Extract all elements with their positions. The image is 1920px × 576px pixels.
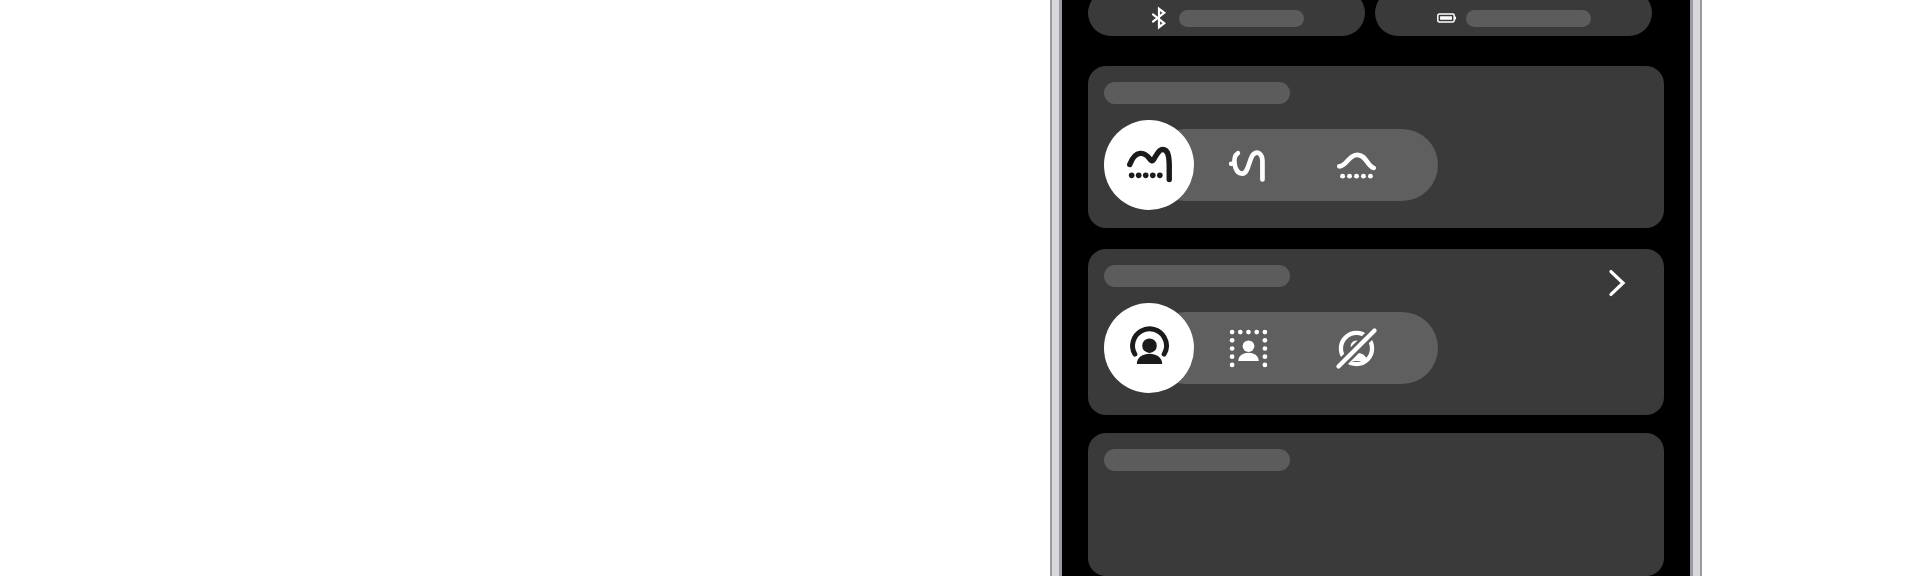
button[interactable]: Subtle background bbox=[1302, 120, 1411, 210]
button[interactable]: Battery bbox=[1375, 0, 1652, 36]
button[interactable]: Blur background bbox=[1088, 66, 1664, 228]
button[interactable]: Framing options bbox=[1194, 303, 1302, 393]
button[interactable]: Auto framing on bbox=[1088, 249, 1664, 415]
button[interactable]: Blur background bbox=[1104, 120, 1194, 210]
button[interactable]: Auto framing on bbox=[1104, 303, 1194, 393]
button[interactable]: Wavy background bbox=[1194, 120, 1302, 210]
button[interactable]: More framing options bbox=[1602, 268, 1632, 298]
button[interactable]: Bluetooth bbox=[1088, 0, 1365, 36]
other: Battery bbox=[1436, 8, 1456, 28]
button[interactable] bbox=[1088, 433, 1664, 576]
button[interactable]: Framing off bbox=[1302, 303, 1411, 393]
other: Bluetooth bbox=[1149, 8, 1169, 28]
